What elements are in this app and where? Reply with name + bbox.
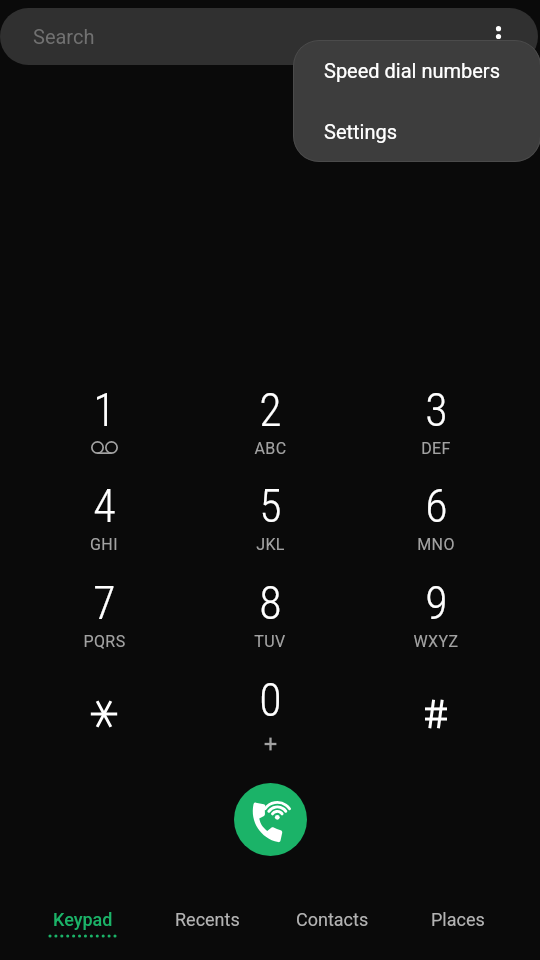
staticText: DEF bbox=[421, 439, 451, 458]
staticText: MNO bbox=[417, 535, 455, 554]
staticText: Settings bbox=[324, 120, 398, 143]
staticText: 2 bbox=[259, 383, 282, 437]
staticText: 9 bbox=[425, 576, 448, 630]
button[interactable]: 5 bbox=[187, 474, 353, 570]
button[interactable]: * bbox=[21, 668, 187, 764]
staticText: 8 bbox=[259, 576, 282, 630]
staticText: TUV bbox=[254, 632, 286, 651]
staticText: GHI bbox=[90, 535, 118, 554]
staticText: Contacts bbox=[296, 909, 369, 930]
button[interactable]: 0 bbox=[187, 668, 353, 764]
button[interactable]: 2 bbox=[187, 378, 353, 474]
button[interactable]: Settings bbox=[293, 101, 540, 162]
button[interactable]: 6 bbox=[353, 474, 519, 570]
staticText: Speed dial numbers bbox=[324, 59, 500, 82]
staticText: Keypad bbox=[53, 909, 113, 930]
staticText: Search bbox=[33, 25, 95, 48]
staticText: 3 bbox=[425, 383, 448, 437]
staticText: 5 bbox=[259, 479, 282, 533]
button[interactable]: 3 bbox=[353, 378, 519, 474]
button[interactable]: 9 bbox=[353, 571, 519, 667]
button[interactable]: Call bbox=[234, 783, 307, 856]
staticText: 6 bbox=[425, 479, 448, 533]
staticText: PQRS bbox=[83, 632, 126, 651]
button[interactable]: Places bbox=[395, 900, 520, 945]
staticText: 0 bbox=[259, 673, 282, 727]
button[interactable]: 1 bbox=[21, 378, 187, 474]
button[interactable]: Speed dial numbers bbox=[293, 40, 540, 101]
button[interactable]: 8 bbox=[187, 571, 353, 667]
button[interactable]: Recents bbox=[145, 900, 270, 945]
button[interactable]: 7 bbox=[21, 571, 187, 667]
staticText: 1 bbox=[93, 383, 116, 437]
staticText: 7 bbox=[93, 576, 116, 630]
button[interactable]: Contacts bbox=[270, 900, 395, 945]
button[interactable]: Search bbox=[0, 8, 538, 65]
staticText: 4 bbox=[93, 479, 116, 533]
button[interactable]: 4 bbox=[21, 474, 187, 570]
button[interactable]: Keypad bbox=[20, 900, 145, 945]
button[interactable]: More options bbox=[483, 8, 514, 65]
staticText: ABC bbox=[254, 439, 287, 458]
staticText: WXYZ bbox=[413, 632, 459, 651]
staticText: Places bbox=[431, 909, 485, 930]
staticText: JKL bbox=[256, 535, 285, 554]
button[interactable]: # bbox=[353, 668, 519, 764]
staticText: Recents bbox=[175, 909, 240, 930]
